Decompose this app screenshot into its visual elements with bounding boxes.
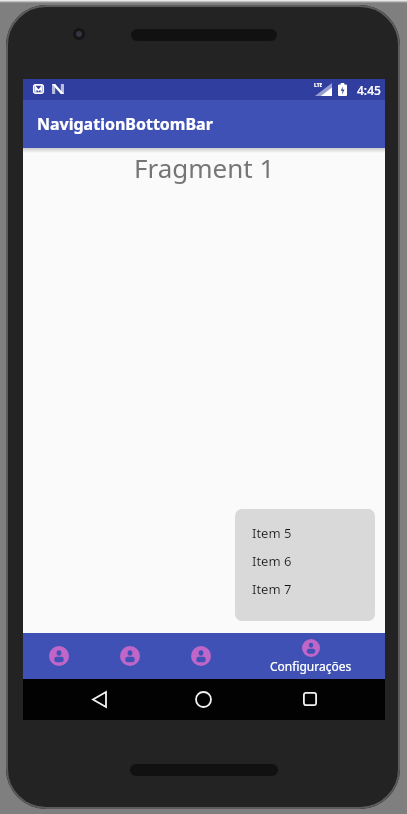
button[interactable] [23, 633, 94, 679]
button[interactable]: Item 7 [235, 575, 375, 603]
button[interactable]: Item 6 [235, 547, 375, 575]
staticText: NavigationBottomBar [37, 113, 213, 135]
staticText: Item 5 [252, 524, 292, 542]
button[interactable] [165, 633, 236, 679]
button[interactable]: Item 5 [235, 519, 375, 547]
button[interactable]: Configurações [236, 633, 385, 679]
staticText: Item 6 [252, 552, 292, 570]
staticText: Item 7 [252, 580, 292, 598]
staticText: Fragment 1 [134, 150, 275, 185]
staticText: Configurações [270, 658, 352, 674]
button[interactable] [195, 691, 212, 708]
button[interactable] [93, 692, 106, 707]
staticText: LTE [314, 82, 323, 89]
staticText: 4:45 [357, 82, 381, 98]
button[interactable] [303, 692, 317, 706]
button[interactable] [94, 633, 165, 679]
